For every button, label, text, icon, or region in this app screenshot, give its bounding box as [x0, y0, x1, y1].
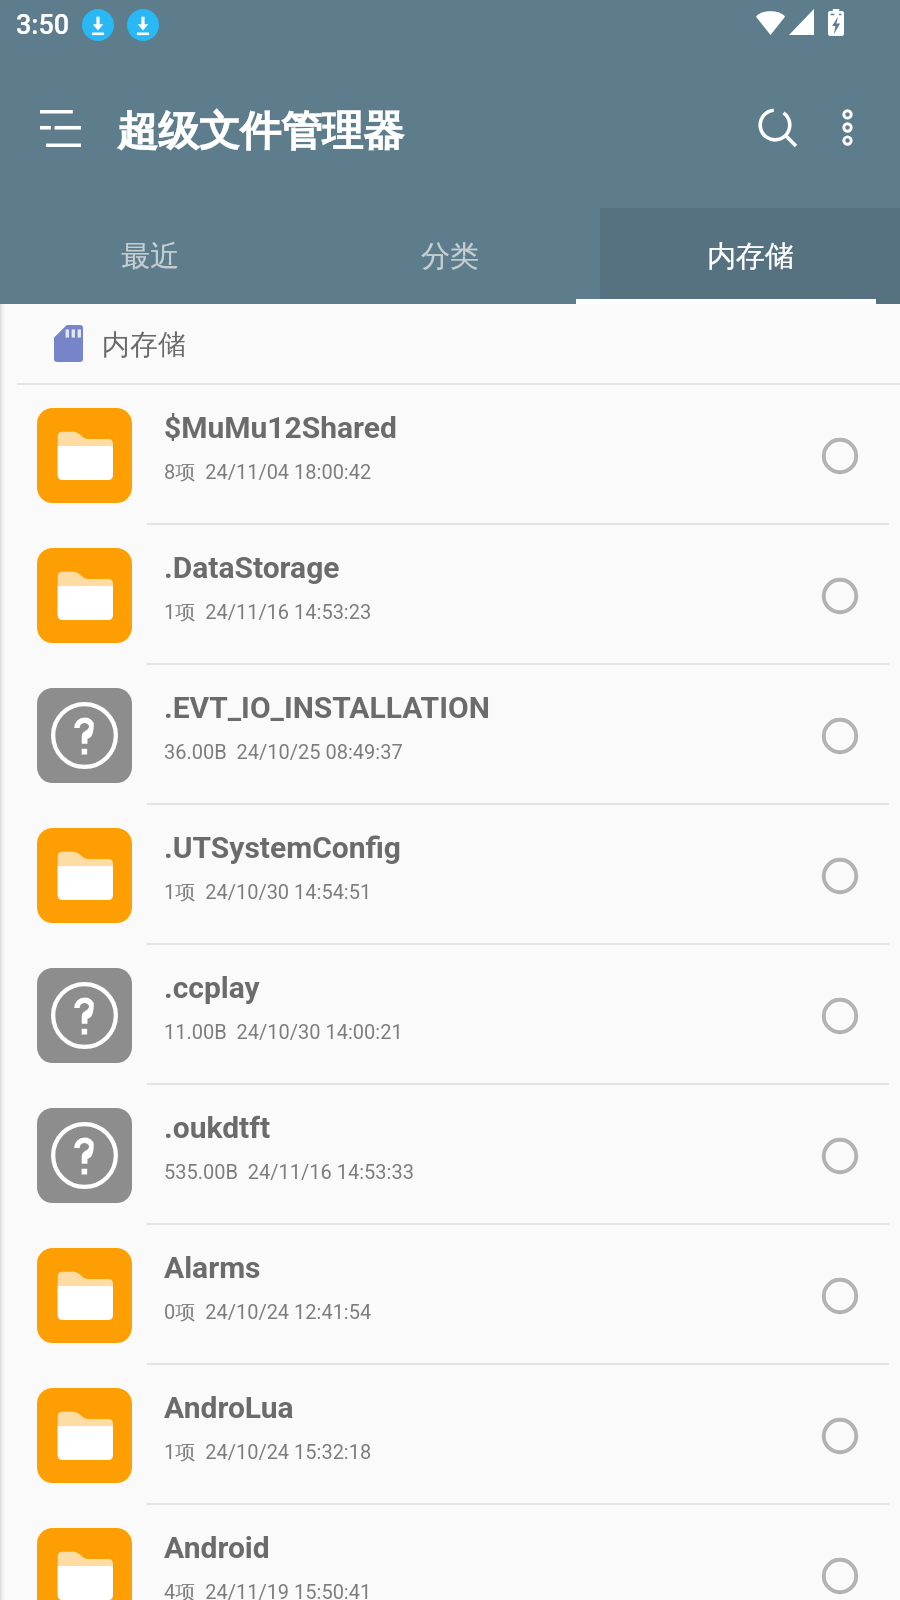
staticText: 分类: [421, 238, 479, 275]
button[interactable]: 最近: [0, 208, 300, 304]
button[interactable]: $MuMu12Shared: [0, 385, 900, 525]
staticText: 1项 24/10/24 15:32:18: [164, 1440, 372, 1465]
button[interactable]: .oukdtft: [0, 1085, 900, 1225]
staticText: Android: [164, 1530, 270, 1565]
button[interactable]: .EVT_IO_INSTALLATION: [0, 665, 900, 805]
button[interactable]: Open navigation menu: [26, 94, 86, 154]
button[interactable]: Select item: [811, 1127, 868, 1184]
staticText: 超级文件管理器: [117, 106, 404, 158]
staticText: 0项 24/10/24 12:41:54: [164, 1300, 372, 1325]
staticText: .ccplay: [164, 970, 260, 1005]
button[interactable]: Select item: [811, 567, 868, 624]
staticText: 8项 24/11/04 18:00:42: [164, 460, 372, 485]
staticText: $MuMu12Shared: [164, 410, 397, 445]
staticText: .DataStorage: [164, 550, 340, 585]
button[interactable]: AndroLua: [0, 1365, 900, 1505]
button[interactable]: .UTSystemConfig: [0, 805, 900, 945]
button[interactable]: Alarms: [0, 1225, 900, 1365]
button[interactable]: Search: [746, 96, 804, 154]
staticText: 3:50: [16, 9, 70, 41]
staticText: 1项 24/10/30 14:54:51: [164, 880, 372, 905]
button[interactable]: Select item: [811, 847, 868, 904]
staticText: .EVT_IO_INSTALLATION: [164, 690, 490, 725]
staticText: 4项 24/11/19 15:50:41: [164, 1580, 372, 1600]
button[interactable]: Select item: [811, 1547, 868, 1600]
button[interactable]: 内存储: [0, 304, 900, 385]
button[interactable]: Select item: [811, 1407, 868, 1464]
button[interactable]: .DataStorage: [0, 525, 900, 665]
staticText: 535.00B 24/11/16 14:53:33: [164, 1160, 414, 1183]
staticText: .oukdtft: [164, 1110, 271, 1145]
button[interactable]: 内存储: [600, 208, 900, 304]
button[interactable]: More options: [819, 99, 876, 156]
staticText: 1项 24/11/16 14:53:23: [164, 600, 372, 625]
staticText: 36.00B 24/10/25 08:49:37: [164, 740, 403, 763]
staticText: .UTSystemConfig: [164, 830, 401, 865]
button[interactable]: Select item: [811, 707, 868, 764]
staticText: Alarms: [164, 1250, 261, 1285]
button[interactable]: Select item: [811, 987, 868, 1044]
button[interactable]: Select item: [811, 1267, 868, 1324]
staticText: AndroLua: [164, 1390, 294, 1425]
staticText: 11.00B 24/10/30 14:00:21: [164, 1020, 403, 1043]
staticText: 内存储: [707, 238, 794, 275]
staticText: 最近: [121, 238, 179, 275]
button[interactable]: .ccplay: [0, 945, 900, 1085]
button[interactable]: 分类: [300, 208, 600, 304]
button[interactable]: Select item: [811, 427, 868, 484]
button[interactable]: Android: [0, 1505, 900, 1600]
staticText: 内存储: [102, 327, 186, 362]
